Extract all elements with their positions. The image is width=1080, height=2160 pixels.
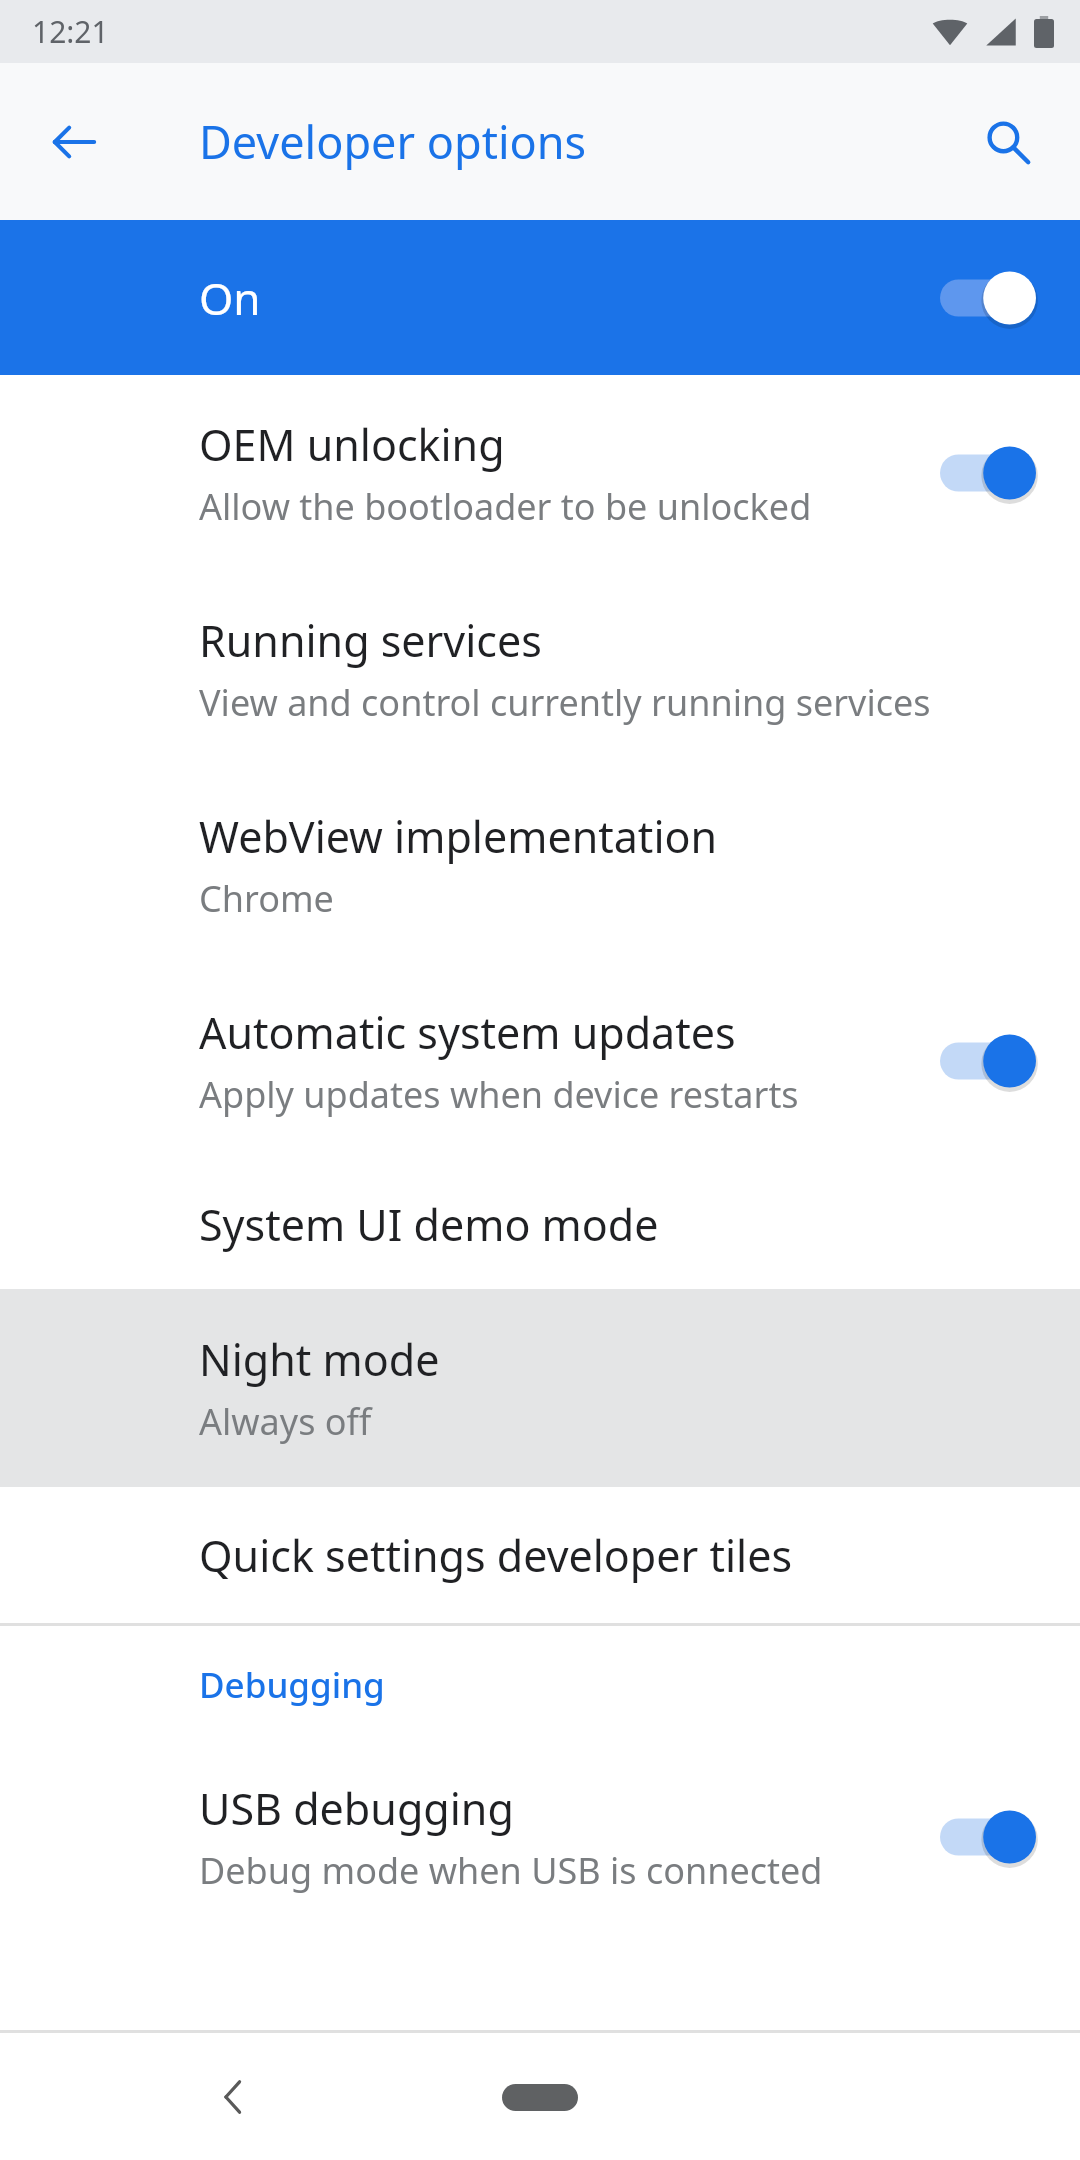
staticText: View and control currently running servi… <box>199 678 931 727</box>
staticText: Allow the bootloader to be unlocked <box>199 482 812 531</box>
button[interactable]: WebView implementation <box>0 767 1080 963</box>
button[interactable]: Night mode <box>0 1289 1080 1487</box>
staticText: Debug mode when USB is connected <box>199 1846 823 1895</box>
button[interactable]: Quick settings developer tiles <box>0 1487 1080 1623</box>
staticText: Automatic system updates <box>199 1003 736 1062</box>
staticText: Night mode <box>199 1330 440 1389</box>
button[interactable]: Running services <box>0 571 1080 767</box>
staticText: Always off <box>199 1397 372 1446</box>
staticText: Debugging <box>199 1661 385 1709</box>
staticText: WebView implementation <box>199 807 718 866</box>
button[interactable]: System UI demo mode <box>0 1159 1080 1289</box>
staticText: Apply updates when device restarts <box>199 1070 799 1119</box>
button[interactable]: On <box>0 220 1080 375</box>
staticText: Chrome <box>199 874 334 923</box>
staticText: 12:21 <box>32 11 109 52</box>
button[interactable]: Back <box>28 96 120 188</box>
button[interactable]: Automatic system updates <box>0 963 1080 1159</box>
button[interactable]: USB debugging <box>0 1744 1080 1930</box>
button[interactable]: Home <box>480 2057 600 2137</box>
staticText: System UI demo mode <box>199 1195 659 1254</box>
staticText: Running services <box>199 611 542 670</box>
button[interactable]: Search <box>962 96 1054 188</box>
staticText: USB debugging <box>199 1779 514 1838</box>
button[interactable]: Back <box>189 2051 281 2143</box>
staticText: On <box>199 268 261 328</box>
staticText: OEM unlocking <box>199 415 505 474</box>
staticText: Developer options <box>199 111 587 172</box>
button[interactable]: OEM unlocking <box>0 375 1080 571</box>
staticText: Quick settings developer tiles <box>199 1526 793 1585</box>
